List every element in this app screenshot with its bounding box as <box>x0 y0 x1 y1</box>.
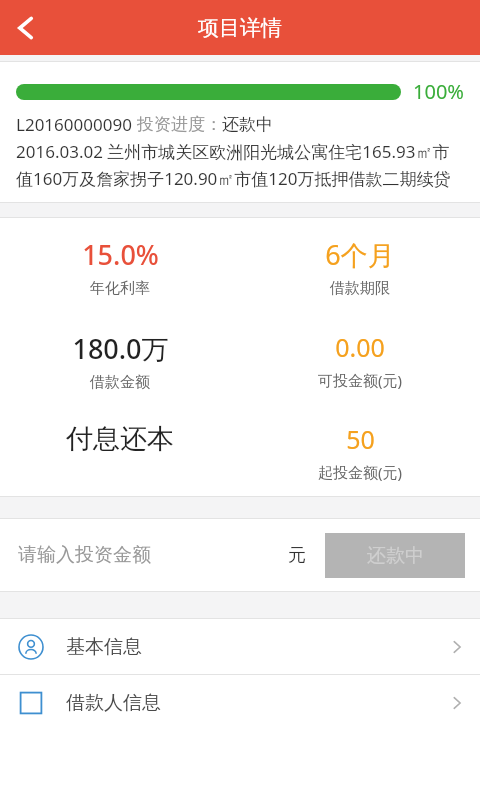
staticText: 借款人信息 <box>66 691 161 715</box>
staticText: 15.0% <box>82 236 159 273</box>
staticText: 50 <box>346 422 375 456</box>
button[interactable]: 还款中 <box>325 533 465 578</box>
staticText: 基本信息 <box>66 635 142 659</box>
staticText: 还款中 <box>222 114 273 135</box>
staticText: 元 <box>288 544 306 567</box>
button[interactable]: 基本信息 <box>0 619 480 674</box>
staticText: 还款中 <box>367 544 424 568</box>
button[interactable]: Back <box>0 2 52 54</box>
staticText: 借款期限 <box>330 279 390 298</box>
staticText: 付息还本 <box>66 422 174 456</box>
staticText: 请输入投资金额 <box>18 543 151 567</box>
staticText: 起投金额(元) <box>318 462 403 482</box>
staticText: 180.0万 <box>72 330 169 367</box>
staticText: 项目详情 <box>198 15 282 41</box>
staticText: 借款金额 <box>90 373 150 392</box>
staticText: 2016.03.02 兰州市城关区欧洲阳光城公寓住宅165.93㎡市值160万及… <box>16 140 464 190</box>
staticText: 年化利率 <box>90 279 150 298</box>
staticText: L20160000090 <box>16 113 137 136</box>
staticText: 投资进度： <box>137 114 222 135</box>
staticText: 可投金额(元) <box>318 370 403 390</box>
staticText: 0.00 <box>335 330 385 364</box>
staticText: 100% <box>413 78 464 105</box>
button[interactable]: 借款人信息 <box>0 675 480 730</box>
staticText: 6个月 <box>325 236 395 273</box>
